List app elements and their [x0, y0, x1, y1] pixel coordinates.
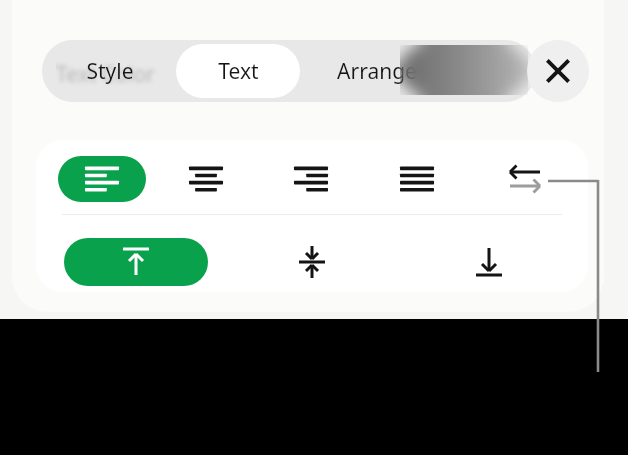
staticText: Style: [86, 57, 134, 86]
button[interactable]: Text: [176, 44, 300, 98]
button[interactable]: Arrange: [306, 44, 448, 98]
staticText: Arrange: [337, 57, 417, 86]
button[interactable]: Text direction: [487, 156, 563, 202]
button[interactable]: Align right: [273, 156, 349, 202]
button[interactable]: Align bottom: [459, 238, 519, 286]
button[interactable]: Justify: [379, 156, 455, 202]
button[interactable]: Align middle: [282, 238, 342, 286]
button[interactable]: Align center: [168, 156, 244, 202]
staticText: Text Color: [56, 60, 155, 89]
button[interactable]: Close: [527, 40, 589, 102]
button[interactable]: Style: [48, 44, 172, 98]
button[interactable]: Align left: [58, 156, 146, 202]
button[interactable]: Align top: [64, 238, 208, 286]
staticText: Text: [218, 57, 259, 86]
